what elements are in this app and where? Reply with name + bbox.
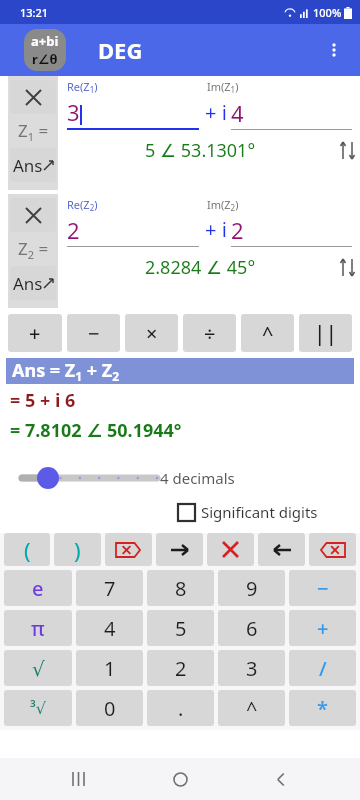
staticText: Significant digits: [201, 502, 318, 522]
button[interactable]: ³√: [4, 690, 72, 726]
button[interactable]: /: [289, 650, 356, 686]
staticText: ×: [146, 320, 158, 347]
button[interactable]: −: [289, 570, 356, 606]
button[interactable]: Swap representation: [334, 254, 360, 280]
staticText: ÷: [204, 320, 216, 347]
button[interactable]: Toggle complex format: [24, 29, 66, 71]
staticText: 2: [231, 215, 244, 245]
staticText: Re(Z2): [67, 197, 207, 214]
staticText: ^: [262, 320, 274, 347]
staticText: 100%: [313, 5, 342, 20]
staticText: .: [178, 695, 184, 722]
staticText: −: [317, 575, 329, 602]
staticText: ³√: [30, 697, 46, 719]
button[interactable]: 8: [147, 570, 214, 606]
staticText: *: [317, 695, 328, 722]
button[interactable]: Clear Z1: [10, 80, 56, 114]
button[interactable]: More options: [314, 30, 354, 70]
button[interactable]: ×: [125, 314, 178, 352]
button[interactable]: (: [4, 533, 50, 566]
button[interactable]: Swap representation: [334, 137, 360, 163]
button[interactable]: *: [289, 690, 356, 726]
staticText: +: [29, 320, 41, 347]
staticText: 9: [246, 575, 258, 602]
staticText: 0: [104, 695, 116, 722]
staticText: Re(Z1): [67, 79, 207, 96]
button[interactable]: Ans: [10, 148, 56, 182]
button[interactable]: √: [4, 650, 72, 686]
button[interactable]: Backspace: [309, 533, 356, 566]
staticText: = 5 + i 6: [10, 388, 76, 413]
staticText: (: [24, 535, 31, 565]
staticText: 8: [175, 575, 187, 602]
button[interactable]: ÷: [183, 314, 236, 352]
button[interactable]: 9: [218, 570, 285, 606]
staticText: 4 decimals: [160, 468, 235, 488]
staticText: 6: [246, 615, 258, 642]
staticText: Im(Z2): [207, 197, 239, 214]
button[interactable]: 3: [218, 650, 285, 686]
button[interactable]: +: [289, 610, 356, 646]
staticText: a+bi: [31, 32, 59, 50]
button[interactable]: π: [4, 610, 72, 646]
staticText: ^: [246, 695, 258, 722]
staticText: ): [74, 535, 81, 565]
staticText: +: [317, 615, 329, 642]
button[interactable]: Clear Z2: [10, 198, 56, 232]
button[interactable]: Ans: [10, 266, 56, 300]
button[interactable]: Delete all right: [105, 533, 152, 566]
staticText: 7: [104, 575, 116, 602]
button[interactable]: Recent apps: [57, 758, 101, 800]
staticText: Ans: [13, 272, 43, 295]
button[interactable]: ^: [218, 690, 285, 726]
staticText: 4: [104, 615, 116, 642]
staticText: Ans: [13, 154, 43, 177]
button[interactable]: Back: [259, 758, 303, 800]
button[interactable]: −: [67, 314, 120, 352]
staticText: /: [319, 655, 327, 682]
button[interactable]: 2: [147, 650, 214, 686]
staticText: √: [32, 657, 45, 680]
staticText: 5: [175, 615, 187, 642]
staticText: + i: [205, 216, 227, 243]
staticText: 4: [231, 98, 244, 128]
button[interactable]: Move right: [156, 533, 203, 566]
button[interactable]: 0: [76, 690, 143, 726]
button[interactable]: ||: [299, 314, 352, 352]
button[interactable]: Home: [158, 758, 202, 800]
staticText: DEG: [98, 35, 143, 65]
staticText: 2: [175, 655, 187, 682]
staticText: −: [88, 320, 100, 347]
button[interactable]: ^: [241, 314, 294, 352]
staticText: = 7.8102 ∠ 50.1944°: [10, 418, 182, 443]
staticText: r∠θ: [32, 50, 58, 68]
staticText: 3: [246, 655, 258, 682]
button[interactable]: +: [8, 314, 62, 352]
staticText: e: [32, 575, 44, 602]
staticText: Ans = Z1 + Z2: [12, 358, 120, 384]
staticText: Im(Z1): [207, 79, 239, 96]
button[interactable]: ): [54, 533, 101, 566]
button[interactable]: Move left: [258, 533, 305, 566]
staticText: Z1 =: [18, 119, 49, 144]
staticText: 5 ∠ 53.1301°: [145, 138, 256, 163]
button[interactable]: Decimal places slider: [0, 463, 160, 493]
staticText: π: [31, 615, 45, 642]
button[interactable]: 7: [76, 570, 143, 606]
button[interactable]: .: [147, 690, 214, 726]
staticText: 2: [67, 215, 80, 245]
staticText: Z2 =: [18, 237, 49, 262]
button[interactable]: 6: [218, 610, 285, 646]
staticText: 2.8284 ∠ 45°: [145, 255, 256, 280]
button[interactable]: Significant digits: [178, 499, 360, 525]
button[interactable]: Clear: [207, 533, 254, 566]
staticText: 3: [67, 97, 80, 127]
button[interactable]: 1: [76, 650, 143, 686]
staticText: ||: [314, 319, 338, 348]
button[interactable]: e: [4, 570, 72, 606]
button[interactable]: Ans = Z1 + Z2: [6, 358, 354, 384]
button[interactable]: 4: [76, 610, 143, 646]
staticText: 1: [104, 655, 116, 682]
button[interactable]: 5: [147, 610, 214, 646]
staticText: + i: [205, 99, 227, 126]
